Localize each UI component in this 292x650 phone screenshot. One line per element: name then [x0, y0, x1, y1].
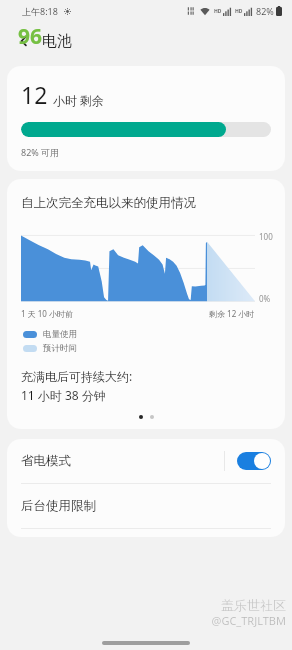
staticText: 12 [21, 79, 48, 110]
button[interactable]: Back [12, 29, 36, 53]
staticText: 96 [18, 22, 43, 51]
staticText: 0% [259, 293, 271, 304]
button[interactable]: 后台使用限制 [7, 484, 285, 528]
staticText: @GC_TRJLTBM [211, 613, 286, 628]
staticText: 小时 剩余 [53, 92, 105, 108]
button[interactable]: 省电模式 toggle [237, 452, 271, 470]
staticText: 82% [256, 5, 274, 17]
staticText: HD [214, 8, 222, 15]
staticText: 省电模式 [21, 453, 71, 469]
staticText: 盖乐世社区 [221, 597, 286, 613]
staticText: 自上次完全充电以来的使用情况 [21, 195, 196, 211]
staticText: 剩余 12 小时 [209, 308, 255, 319]
staticText: 上午8:18 [22, 5, 58, 17]
staticText: 电量使用 [43, 329, 77, 340]
staticText: HD [235, 8, 243, 15]
staticText: 后台使用限制 [21, 498, 96, 514]
staticText: 1 天 10 小时前 [21, 308, 73, 319]
staticText: 预计时间 [43, 343, 77, 354]
staticText: 11 小时 38 分钟 [21, 387, 106, 403]
staticText: 100 [259, 231, 273, 242]
staticText: 电池 [42, 32, 72, 51]
button[interactable]: 自上次完全充电以来的使用情况 [7, 179, 285, 429]
staticText: 充满电后可持续大约: [21, 368, 133, 384]
button[interactable]: 省电模式 [7, 439, 285, 483]
staticText: 82% 可用 [21, 146, 60, 158]
